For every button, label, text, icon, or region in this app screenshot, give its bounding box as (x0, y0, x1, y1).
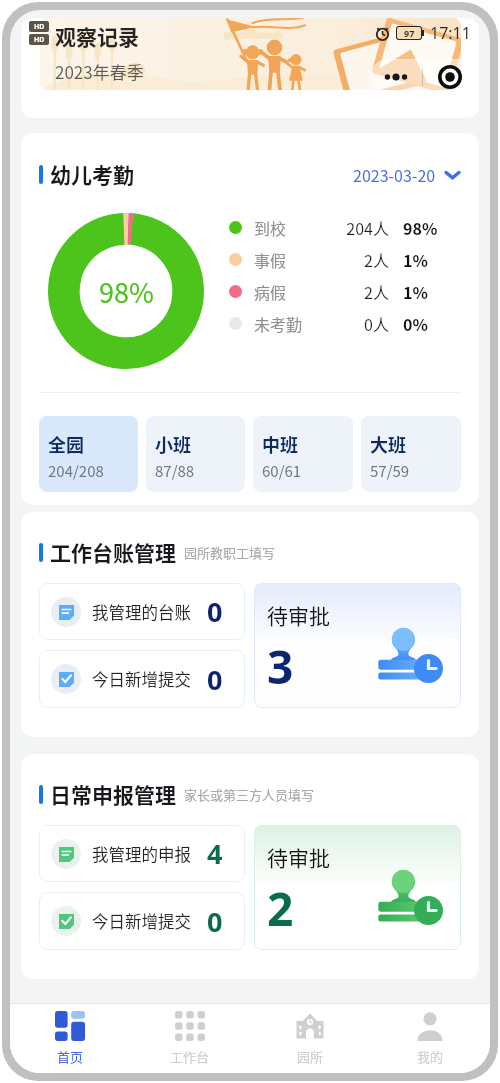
button[interactable]: 工作台 (130, 1004, 250, 1073)
staticText: 0 (207, 903, 223, 940)
staticText: 2人 (340, 280, 389, 303)
button[interactable]: 2023-03-20 (353, 163, 461, 186)
staticText: 未考勤 (254, 312, 303, 335)
staticText: 事假 (254, 248, 287, 271)
button[interactable]: 今日新增提交 (39, 650, 245, 708)
button[interactable]: 我管理的申报 (39, 825, 245, 882)
staticText: 2人 (340, 248, 389, 271)
staticText: 工作台 (170, 1047, 210, 1066)
staticText: 60/61 (262, 460, 302, 482)
staticText: 我的 (417, 1047, 444, 1066)
button[interactable]: 待审批 (254, 583, 461, 708)
staticText: 1% (403, 280, 428, 303)
staticText: 家长或第三方人员填写 (184, 785, 315, 804)
staticText: 17:11 (430, 22, 471, 44)
staticText: 小班 (155, 431, 191, 457)
staticText: 0 (207, 593, 223, 630)
staticText: 0 (207, 661, 223, 698)
button[interactable]: 中班 (253, 416, 353, 492)
button[interactable]: 我的 (370, 1004, 490, 1073)
staticText: 病假 (254, 280, 287, 303)
staticText: 园所 (297, 1047, 324, 1066)
staticText: 首页 (57, 1047, 84, 1066)
staticText: 待审批 (267, 842, 330, 872)
staticText: 待审批 (267, 600, 330, 630)
staticText: 观察记录 (55, 21, 139, 51)
staticText: HD (34, 22, 45, 32)
staticText: 2023-03-20 (353, 163, 436, 186)
button[interactable]: 全园 (39, 416, 138, 492)
staticText: 97 (404, 27, 415, 39)
staticText: 全园 (48, 431, 84, 457)
button[interactable]: 今日新增提交 (39, 892, 245, 950)
button[interactable]: Close (423, 59, 476, 95)
button[interactable]: 首页 (10, 1004, 130, 1073)
staticText: 1% (403, 248, 428, 271)
staticText: 2 (267, 877, 294, 940)
staticText: 大班 (370, 431, 406, 457)
staticText: 0% (403, 312, 428, 335)
staticText: HD (34, 35, 45, 45)
staticText: 园所教职工填写 (184, 543, 276, 562)
staticText: 今日新增提交 (92, 909, 191, 933)
staticText: 98% (99, 272, 154, 311)
staticText: 中班 (262, 431, 298, 457)
button[interactable]: 大班 (361, 416, 461, 492)
staticText: 工作台账管理 (50, 537, 176, 567)
staticText: 今日新增提交 (92, 667, 191, 691)
staticText: 3 (267, 635, 294, 698)
button[interactable]: More (370, 59, 422, 95)
button[interactable]: 我管理的台账 (39, 583, 245, 640)
button[interactable]: 园所 (250, 1004, 370, 1073)
staticText: 4 (207, 835, 223, 872)
staticText: 2023年春季 (55, 59, 144, 84)
staticText: 87/88 (155, 460, 195, 482)
staticText: 到校 (254, 216, 287, 239)
staticText: 98% (403, 216, 438, 239)
staticText: 57/59 (370, 460, 410, 482)
staticText: 我管理的台账 (92, 600, 191, 624)
staticText: 204人 (340, 216, 389, 239)
staticText: 204/208 (48, 460, 104, 482)
button[interactable]: 待审批 (254, 825, 461, 950)
staticText: 我管理的申报 (92, 842, 191, 866)
staticText: 日常申报管理 (50, 779, 176, 809)
button[interactable]: 小班 (146, 416, 245, 492)
staticText: 0人 (340, 312, 389, 335)
staticText: 幼儿考勤 (50, 159, 134, 189)
